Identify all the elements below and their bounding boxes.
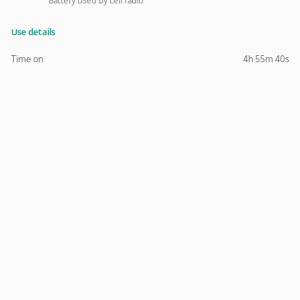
staticText: Battery used by cell radio [48, 0, 143, 6]
staticText: Time on [11, 53, 43, 65]
button[interactable]: Use details [11, 26, 55, 38]
staticText: Use details [11, 26, 55, 38]
staticText: 4h 55m 40s [243, 53, 289, 65]
